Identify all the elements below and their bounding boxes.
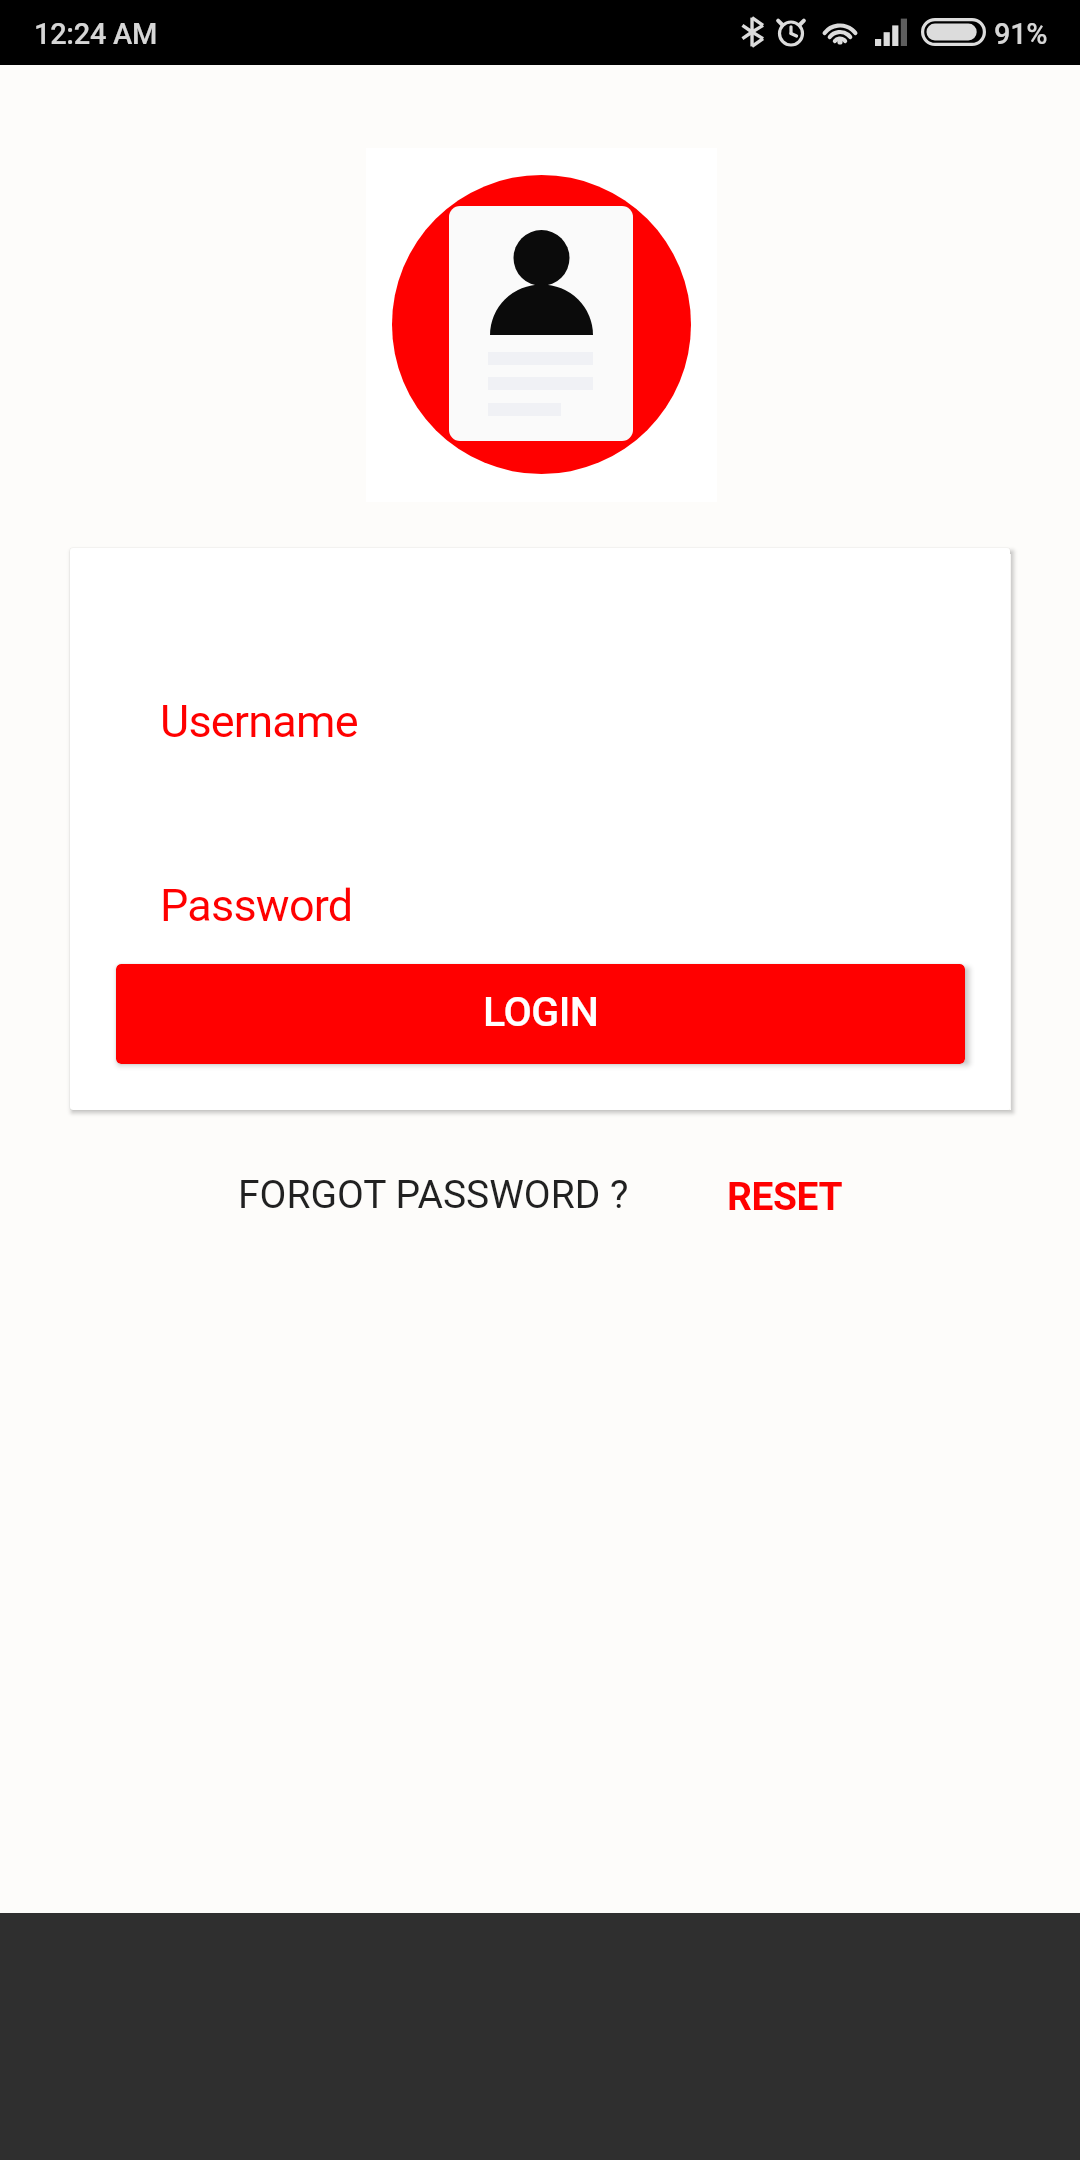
other: App logo: user profile card — [366, 148, 717, 502]
staticText: 91% — [994, 17, 1048, 51]
button[interactable]: Username — [116, 668, 965, 783]
button[interactable]: RESET — [727, 1174, 843, 1220]
button[interactable]: FORGOT PASSWORD ? — [238, 1172, 629, 1218]
button[interactable]: Password — [116, 852, 965, 967]
button[interactable]: LOGIN — [116, 964, 965, 1064]
staticText: 12:24 AM — [34, 17, 158, 51]
staticText: Password — [160, 879, 353, 932]
staticText: LOGIN — [483, 988, 599, 1036]
staticText: Username — [160, 695, 358, 748]
